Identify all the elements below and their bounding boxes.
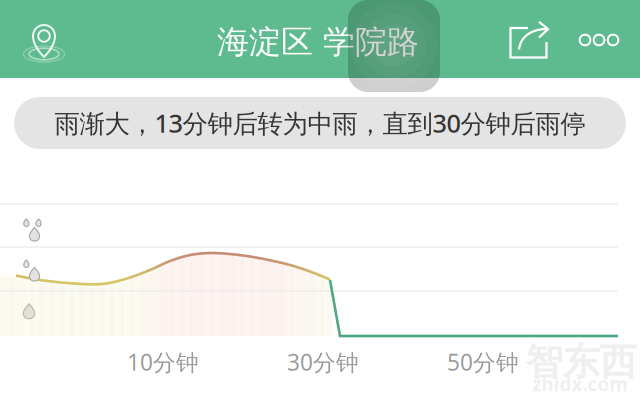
staticText: 50分钟 (447, 347, 519, 377)
staticText: zhidx.com (532, 372, 627, 396)
button[interactable]: Share (502, 16, 556, 68)
button[interactable]: More (571, 19, 627, 61)
staticText: 智东西 (525, 339, 636, 385)
staticText: 海淀区 学院路 (217, 22, 419, 62)
staticText: 10分钟 (127, 347, 199, 377)
button[interactable]: Location (13, 9, 75, 71)
staticText: 雨渐大，13分钟后转为中雨，直到30分钟后雨停 (54, 106, 585, 140)
staticText: 30分钟 (287, 347, 359, 377)
